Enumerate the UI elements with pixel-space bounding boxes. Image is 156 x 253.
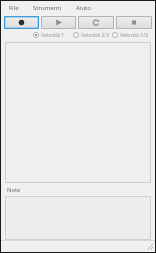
staticText: Velocità 1 [41,31,65,38]
button[interactable]: Velocità 1/2 [112,29,151,40]
button[interactable]: Ripeti [78,16,114,29]
button[interactable] [5,196,151,240]
button[interactable]: File [7,3,21,13]
button[interactable]: Strumenti [31,3,64,13]
button[interactable]: Riproduci [41,16,76,29]
staticText: Note [7,186,21,194]
button[interactable]: Aiuto [74,3,93,13]
staticText: Aiuto [76,4,91,12]
staticText: File [9,4,19,12]
button[interactable]: Stop [116,16,152,29]
staticText: Velocità 2/3 [81,31,110,38]
button[interactable]: Velocità 2/3 [73,29,112,40]
button[interactable]: Velocità 1 [33,29,73,40]
staticText: Strumenti [33,4,62,12]
button[interactable]: Registra [4,16,39,29]
staticText: Velocità 1/2 [120,31,149,38]
